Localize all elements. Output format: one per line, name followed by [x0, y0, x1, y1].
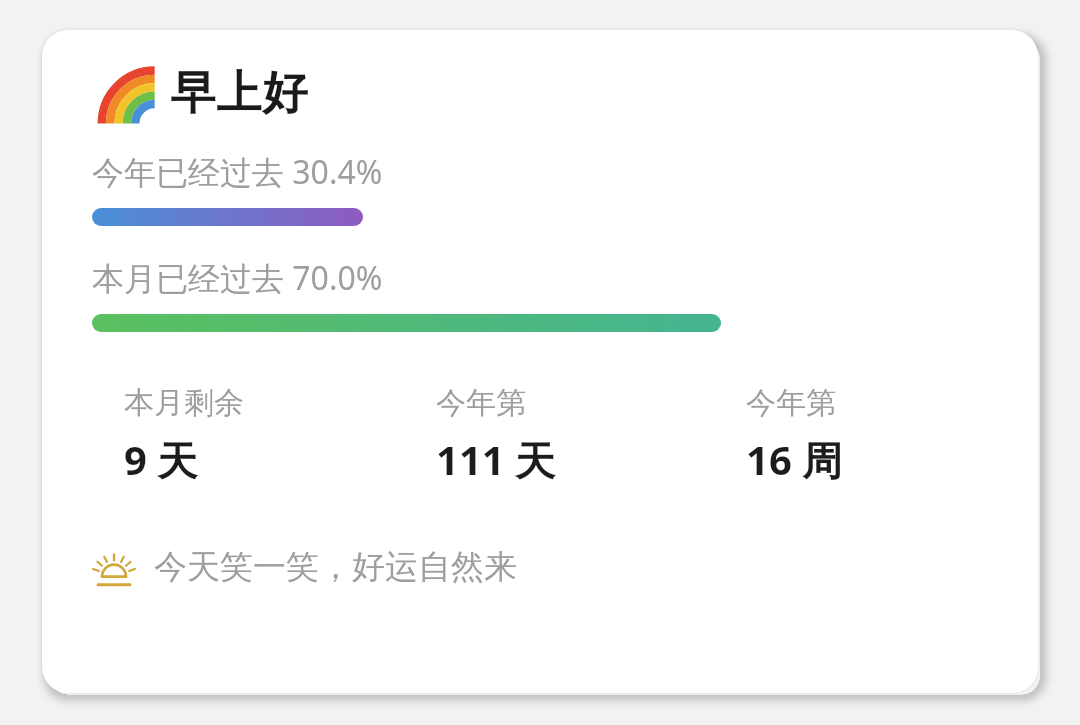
staticText: 今天笑一笑，好运自然来 — [154, 546, 517, 588]
button[interactable]: Daily tip — [94, 543, 517, 591]
staticText: 9 天 — [124, 432, 198, 487]
staticText: 今年第 — [436, 384, 526, 422]
staticText: 早上好 — [170, 65, 308, 122]
staticText: 本月已经过去 70.0% — [92, 256, 383, 300]
staticText: 16 周 — [746, 432, 843, 487]
button[interactable]: 今年第 — [436, 384, 746, 487]
button[interactable]: 今年第 — [746, 384, 996, 487]
button[interactable]: 本月剩余 — [124, 384, 436, 487]
staticText: 今年第 — [746, 384, 836, 422]
other: Daily tip — [94, 543, 134, 591]
button[interactable]: 早上好 — [42, 30, 1038, 693]
staticText: 今年已经过去 30.4% — [92, 150, 383, 194]
staticText: 111 天 — [436, 432, 556, 487]
staticText: 本月剩余 — [124, 384, 244, 422]
